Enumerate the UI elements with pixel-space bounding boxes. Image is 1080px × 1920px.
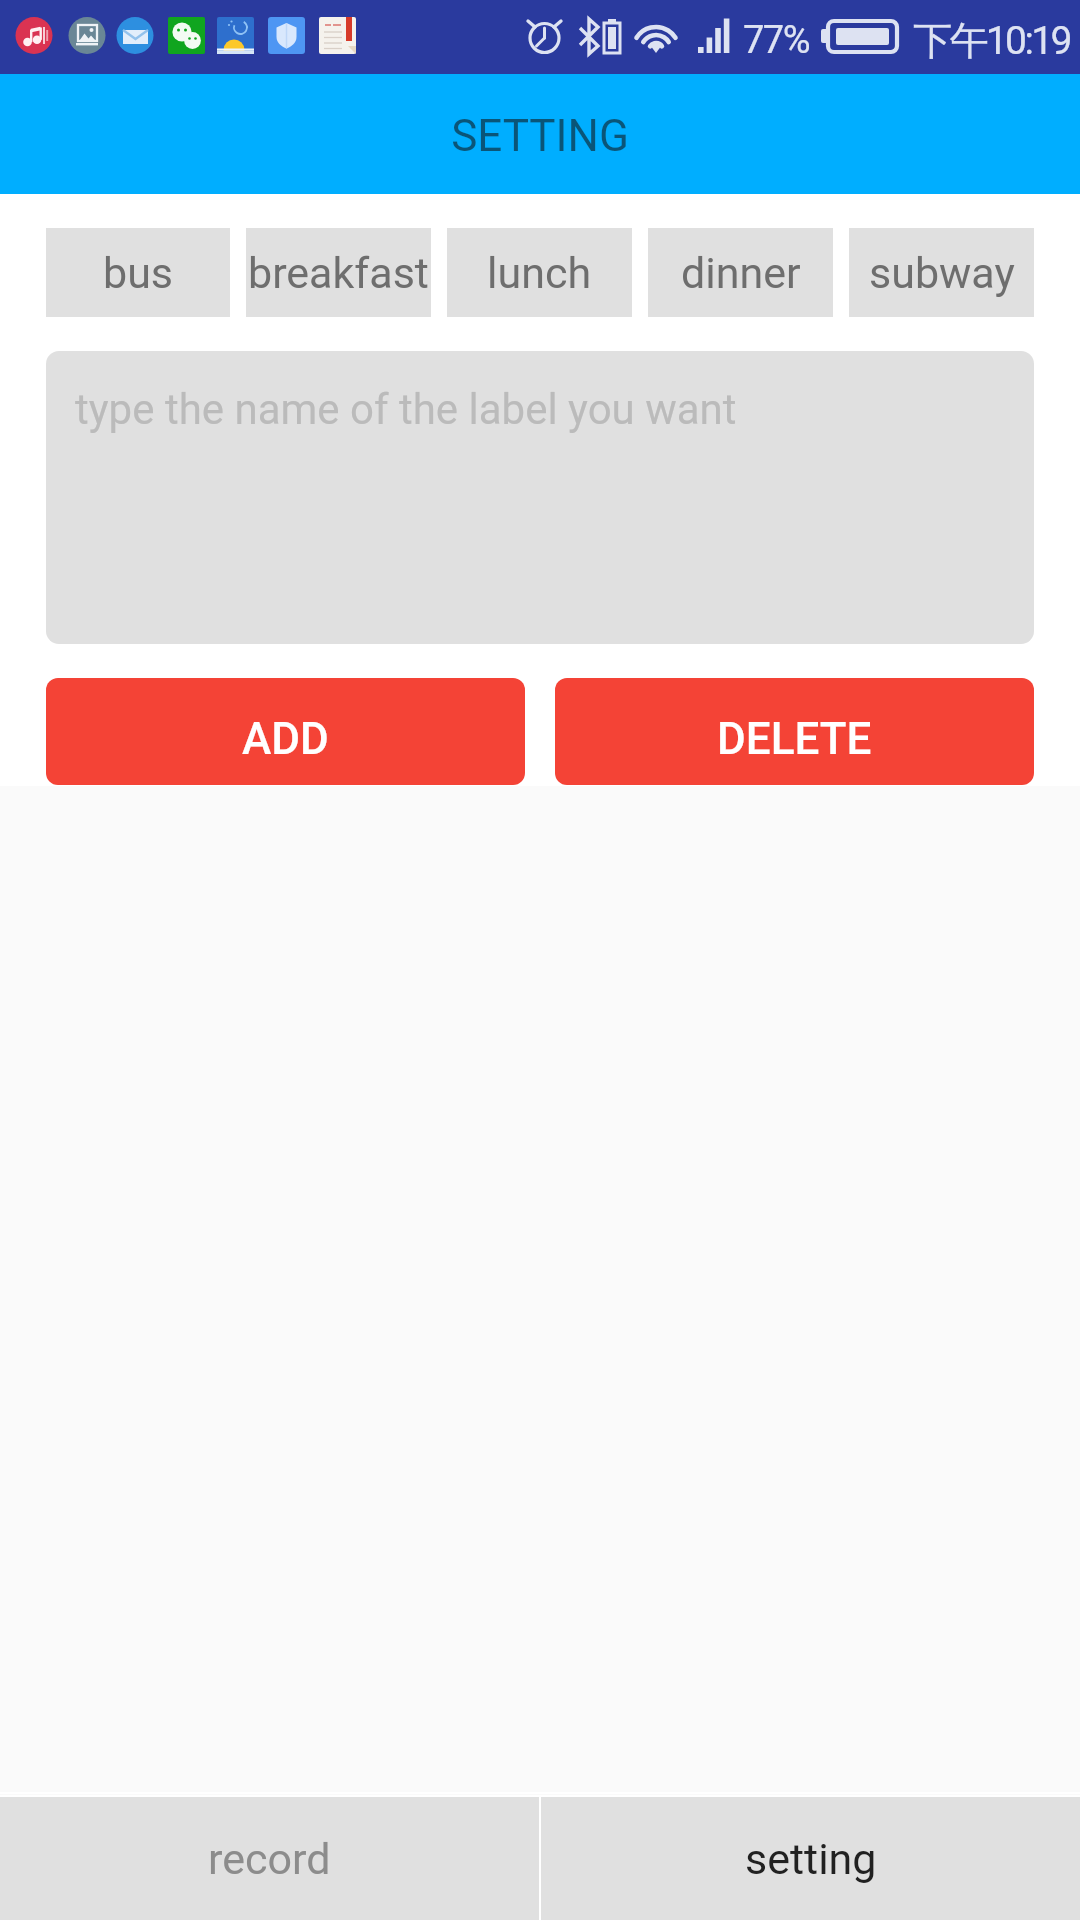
staticText: subway xyxy=(869,248,1015,298)
button[interactable]: ADD xyxy=(46,678,525,785)
staticText: dinner xyxy=(681,248,801,298)
staticText: SETTING xyxy=(451,110,629,162)
button[interactable]: type the name of the label you want xyxy=(46,351,1034,644)
button[interactable]: dinner xyxy=(648,228,833,317)
staticText: bus xyxy=(103,248,174,298)
button[interactable]: subway xyxy=(849,228,1034,317)
staticText: type the name of the label you want xyxy=(75,385,737,434)
staticText: lunch xyxy=(487,248,592,298)
staticText: 下午10:19 xyxy=(913,16,1070,65)
button[interactable]: breakfast xyxy=(246,228,431,317)
button[interactable]: record xyxy=(0,1797,539,1920)
staticText: breakfast xyxy=(248,248,429,298)
staticText: setting xyxy=(745,1834,877,1884)
button[interactable]: setting xyxy=(541,1797,1080,1920)
staticText: record xyxy=(208,1834,331,1884)
staticText: DELETE xyxy=(717,713,872,765)
button[interactable]: DELETE xyxy=(555,678,1034,785)
button[interactable]: bus xyxy=(46,228,230,317)
staticText: ADD xyxy=(242,713,329,765)
button[interactable]: lunch xyxy=(447,228,632,317)
staticText: 77% xyxy=(743,18,810,63)
